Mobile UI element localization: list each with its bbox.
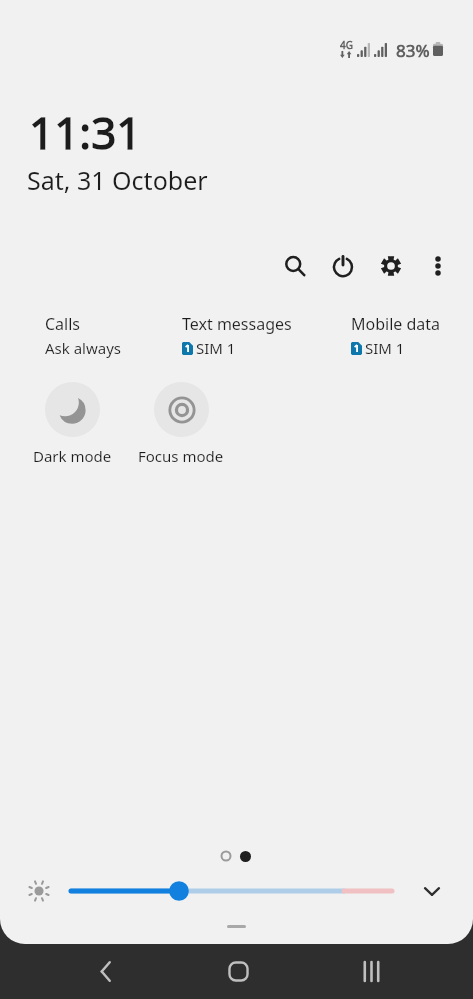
- staticText: 83%: [396, 39, 430, 62]
- button[interactable]: Page 1: [220, 850, 232, 862]
- button[interactable]: Page 2: [240, 851, 251, 862]
- staticText: Focus mode: [138, 446, 224, 466]
- staticText: 4G: [340, 38, 353, 52]
- button[interactable]: Calls: [45, 313, 126, 361]
- button[interactable]: Search: [276, 247, 314, 285]
- button[interactable]: Text messages: [182, 313, 296, 361]
- button[interactable]: More options: [419, 247, 457, 285]
- staticText: 11:31: [29, 102, 142, 162]
- staticText: Ask always: [45, 338, 122, 358]
- staticText: Text messages: [182, 313, 292, 335]
- staticText: SIM 1: [365, 338, 405, 358]
- button[interactable]: Focus mode: [126, 382, 236, 466]
- button[interactable]: Home: [211, 944, 265, 999]
- staticText: Sat, 31 October: [27, 163, 208, 197]
- button[interactable]: Recent apps: [344, 944, 398, 999]
- button[interactable]: Brightness: [58, 876, 403, 906]
- staticText: SIM 1: [196, 338, 236, 358]
- button[interactable]: Mobile data: [351, 313, 445, 361]
- button[interactable]: Power off: [324, 247, 362, 285]
- button[interactable]: Dark mode: [17, 382, 127, 466]
- staticText: Mobile data: [351, 313, 441, 335]
- button[interactable]: Back: [78, 944, 132, 999]
- staticText: Calls: [45, 313, 81, 335]
- button[interactable]: Expand quick settings: [417, 876, 447, 906]
- button[interactable]: Settings: [372, 247, 410, 285]
- staticText: Dark mode: [33, 446, 112, 466]
